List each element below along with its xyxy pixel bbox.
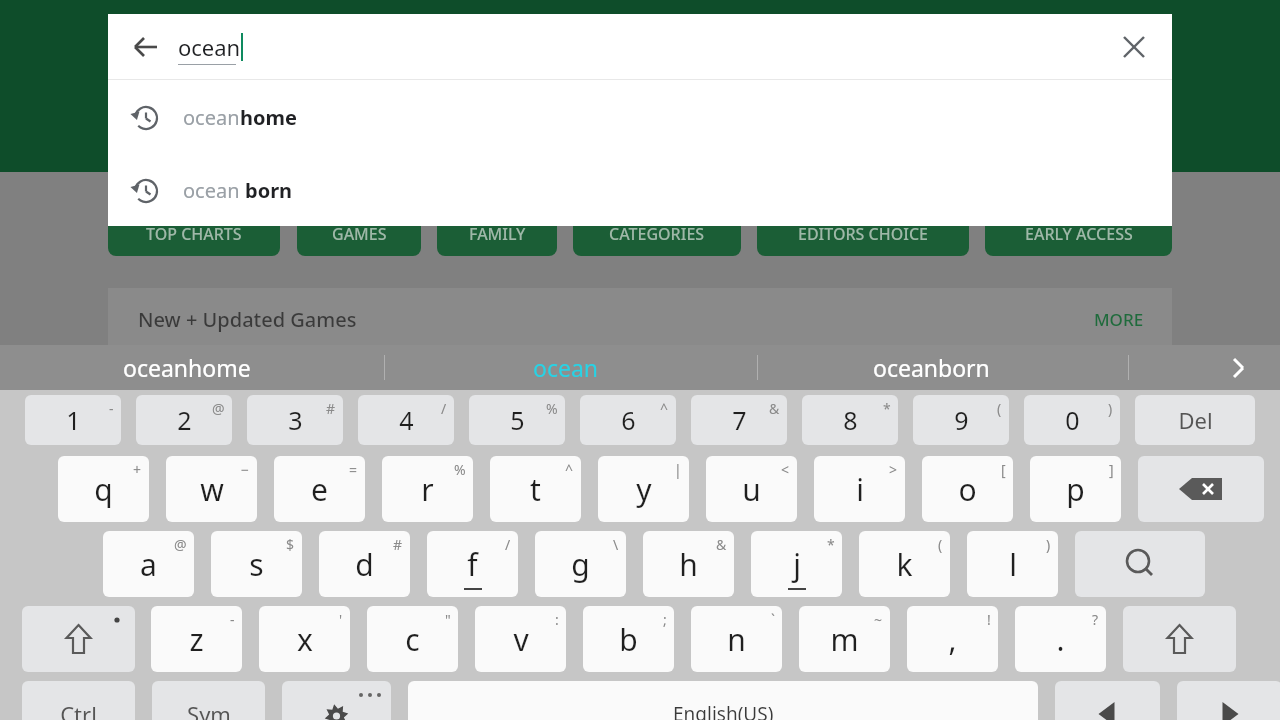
button[interactable]: g (535, 531, 626, 597)
staticText: ocean (533, 352, 599, 383)
button[interactable]: s (211, 531, 302, 597)
button[interactable]: English(US) (408, 681, 1038, 720)
button[interactable]: Shift (1123, 606, 1236, 672)
button[interactable]: Clear search (1106, 19, 1162, 75)
button[interactable]: . (1015, 606, 1106, 672)
staticText: EDITORS CHOICE (798, 223, 928, 245)
button[interactable]: u (706, 456, 797, 522)
button[interactable]: p (1030, 456, 1121, 522)
button[interactable]: l (967, 531, 1058, 597)
staticText: = (349, 460, 358, 479)
staticText: 1 (66, 403, 81, 437)
button[interactable]: ocean (108, 155, 1172, 226)
button[interactable]: 1 (25, 395, 121, 445)
button[interactable]: 9 (913, 395, 1009, 445)
button[interactable]: Cursor right (1177, 681, 1280, 720)
staticText: . (1056, 619, 1065, 660)
button[interactable]: o (922, 456, 1013, 522)
staticText: @ (174, 535, 187, 554)
staticText: * (827, 535, 835, 554)
staticText: p (1066, 469, 1085, 510)
staticText: a (140, 544, 157, 585)
staticText: u (742, 469, 761, 510)
staticText: ^ (660, 399, 669, 418)
button[interactable]: Search (1075, 531, 1205, 597)
button[interactable]: i (814, 456, 905, 522)
staticText: ( (938, 535, 943, 554)
staticText: % (546, 399, 558, 418)
button[interactable]: ocean (533, 345, 599, 390)
button[interactable]: EARLY ACCESS (985, 212, 1172, 256)
staticText: < (781, 460, 790, 479)
staticText: | (674, 460, 682, 479)
button[interactable]: 7 (691, 395, 787, 445)
button[interactable]: Del (1135, 395, 1255, 445)
button[interactable]: v (475, 606, 566, 672)
button[interactable]: Shift (22, 606, 135, 672)
button[interactable]: Sym (152, 681, 265, 720)
button[interactable]: n (691, 606, 782, 672)
button[interactable]: 3 (247, 395, 343, 445)
button[interactable]: 6 (580, 395, 676, 445)
staticText: ; (663, 610, 667, 629)
staticText: t (530, 469, 541, 510)
staticText: v (513, 619, 529, 660)
button[interactable]: d (319, 531, 410, 597)
button[interactable]: k (859, 531, 950, 597)
staticText: c (405, 619, 420, 660)
staticText: k (896, 544, 913, 585)
button[interactable]: e (274, 456, 365, 522)
button[interactable]: j (751, 531, 842, 597)
staticText: ocean (183, 177, 245, 204)
button[interactable]: Ctrl (22, 681, 135, 720)
staticText: FAMILY (469, 223, 526, 245)
staticText: l (1009, 544, 1017, 585)
staticText: home (240, 104, 297, 131)
button[interactable]: 8 (802, 395, 898, 445)
staticText: # (326, 399, 336, 418)
button[interactable]: 0 (1024, 395, 1120, 445)
button[interactable]: , (907, 606, 998, 672)
button[interactable]: TOP CHARTS (108, 212, 280, 256)
button[interactable]: h (643, 531, 734, 597)
staticText: 6 (621, 403, 636, 437)
button[interactable]: CATEGORIES (573, 212, 741, 256)
button[interactable]: FAMILY (437, 212, 557, 256)
staticText: GAMES (332, 223, 387, 245)
staticText: ' (339, 610, 343, 629)
button[interactable]: Keyboard settings (282, 681, 391, 720)
button[interactable]: w (166, 456, 257, 522)
staticText: 8 (843, 403, 858, 437)
button[interactable]: x (259, 606, 350, 672)
button[interactable]: 4 (358, 395, 454, 445)
button[interactable]: Cursor left (1055, 681, 1160, 720)
staticText: e (311, 469, 328, 510)
button[interactable]: ocean (108, 80, 1172, 155)
button[interactable]: a (103, 531, 194, 597)
staticText: g (571, 544, 590, 585)
button[interactable]: t (490, 456, 581, 522)
button[interactable]: MORE (1094, 288, 1144, 350)
button[interactable]: Back (116, 17, 176, 77)
button[interactable]: y (598, 456, 689, 522)
staticText: ocean (183, 104, 240, 131)
button[interactable]: b (583, 606, 674, 672)
button[interactable]: f (427, 531, 518, 597)
button[interactable]: 5 (469, 395, 565, 445)
button[interactable]: z (151, 606, 242, 672)
button[interactable]: q (58, 456, 149, 522)
staticText: born (245, 177, 293, 204)
button[interactable]: 2 (136, 395, 232, 445)
button[interactable]: GAMES (297, 212, 421, 256)
button[interactable]: EDITORS CHOICE (757, 212, 969, 256)
button[interactable]: More suggestions (1210, 345, 1266, 390)
staticText: ~ (874, 610, 883, 629)
staticText: ? (1092, 610, 1099, 629)
button[interactable]: m (799, 606, 890, 672)
button[interactable]: Backspace (1138, 456, 1264, 522)
button[interactable]: r (382, 456, 473, 522)
button[interactable]: c (367, 606, 458, 672)
button[interactable]: oceanborn (873, 345, 990, 390)
staticText: ) (1108, 399, 1113, 418)
button[interactable]: oceanhome (123, 345, 251, 390)
